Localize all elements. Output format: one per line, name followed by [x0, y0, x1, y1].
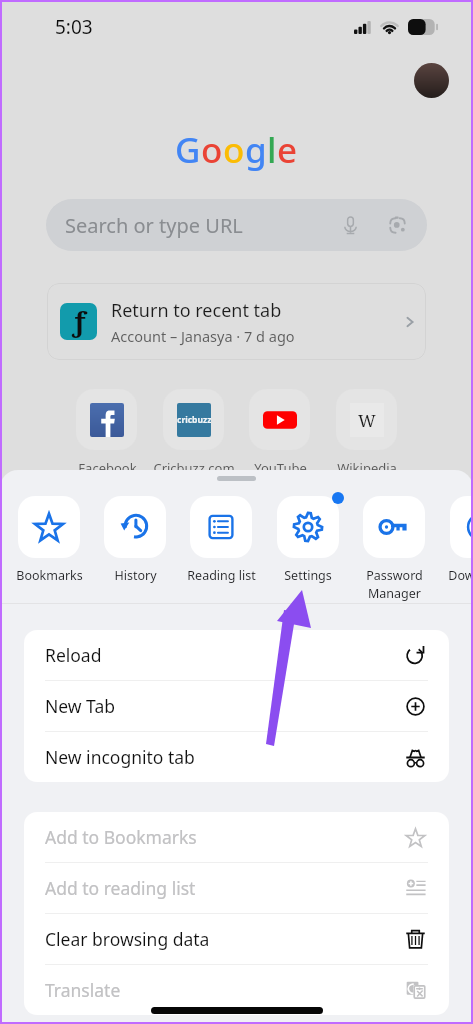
- staticText: l: [267, 126, 277, 174]
- button[interactable]: Google Lens: [384, 212, 410, 238]
- staticText: Clear browsing data: [45, 927, 210, 951]
- button[interactable]: [190, 496, 252, 558]
- staticText: Password Manager: [366, 567, 423, 602]
- button[interactable]: Translate: [24, 965, 449, 1015]
- staticText: cricbuzz: [177, 414, 211, 426]
- staticText: Translate: [45, 978, 121, 1002]
- staticText: Add to Bookmarks: [45, 825, 197, 849]
- button[interactable]: [277, 496, 339, 558]
- staticText: 5:03: [55, 14, 93, 40]
- button[interactable]: [450, 496, 473, 558]
- button[interactable]: Add to reading list: [24, 863, 449, 913]
- staticText: History: [114, 567, 157, 584]
- staticText: Reading list: [187, 567, 256, 584]
- staticText: New incognito tab: [45, 745, 195, 769]
- staticText: G: [175, 126, 201, 174]
- button[interactable]: [18, 496, 80, 558]
- staticText: o: [201, 126, 223, 174]
- staticText: New Tab: [45, 694, 116, 718]
- staticText: Facebook: [78, 459, 137, 473]
- staticText: Downloads: [448, 567, 473, 584]
- button[interactable]: cricbuzz: [163, 389, 224, 473]
- staticText: e: [277, 126, 298, 174]
- button[interactable]: [363, 496, 425, 558]
- button[interactable]: W: [336, 389, 397, 473]
- button[interactable]: New Tab: [24, 681, 449, 731]
- button[interactable]: Account profile: [414, 63, 449, 98]
- button[interactable]: Add to Bookmarks: [24, 812, 449, 862]
- staticText: Return to recent tab: [111, 298, 282, 323]
- staticText: o: [223, 126, 245, 174]
- staticText: W: [358, 409, 376, 432]
- staticText: YouTube: [254, 459, 307, 473]
- staticText: Search or type URL: [65, 212, 243, 239]
- staticText: Settings: [284, 567, 332, 584]
- staticText: Add to reading list: [45, 876, 196, 900]
- staticText: Wikipedia: [337, 459, 397, 473]
- button[interactable]: ƒ: [47, 283, 426, 360]
- button[interactable]: YouTube: [249, 389, 310, 473]
- button[interactable]: Clear browsing data: [24, 914, 449, 964]
- staticText: Bookmarks: [16, 567, 83, 584]
- button[interactable]: Voice search: [337, 212, 363, 238]
- staticText: ƒ: [72, 303, 86, 340]
- button[interactable]: Search or type URL: [46, 199, 427, 251]
- staticText: Reload: [45, 643, 102, 667]
- staticText: g: [245, 126, 267, 174]
- button[interactable]: Facebook: [76, 389, 137, 473]
- button[interactable]: [104, 496, 166, 558]
- button[interactable]: New incognito tab: [24, 732, 449, 782]
- staticText: Account – Janasya · 7 d ago: [111, 326, 295, 346]
- button[interactable]: Reload: [24, 630, 449, 680]
- staticText: Cricbuzz.com: [153, 459, 235, 473]
